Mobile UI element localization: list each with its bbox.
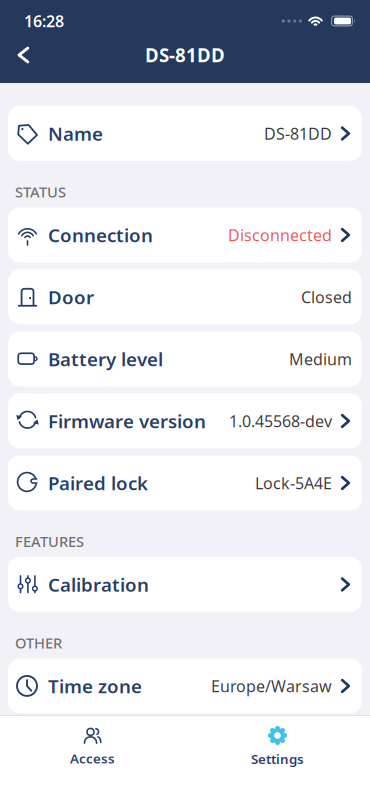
staticText: FEATURES <box>15 531 84 551</box>
button[interactable]: Time zone <box>0 658 370 713</box>
staticText: Settings <box>251 750 304 768</box>
button[interactable]: Settings <box>185 716 370 768</box>
staticText: Europe/Warsaw <box>211 675 332 696</box>
staticText: 1.0.45568-dev <box>229 410 332 432</box>
staticText: Door <box>48 285 94 309</box>
button[interactable]: Firmware version <box>0 393 370 448</box>
button[interactable]: Connection <box>0 207 370 262</box>
button[interactable]: Calibration <box>0 557 370 612</box>
staticText: Calibration <box>48 572 149 597</box>
staticText: Firmware version <box>48 409 206 433</box>
staticText: Closed <box>301 286 352 308</box>
button[interactable]: Name <box>0 106 370 161</box>
staticText: 16:28 <box>24 10 64 32</box>
staticText: Connection <box>48 223 153 247</box>
staticText: Lock-5A4E <box>255 472 332 494</box>
staticText: Paired lock <box>48 471 148 495</box>
button[interactable]: Paired lock <box>0 455 370 510</box>
staticText: Disconnected <box>228 224 332 246</box>
staticText: DS-81DD <box>145 43 225 67</box>
staticText: Name <box>48 121 103 146</box>
button[interactable]: Battery level <box>0 331 370 386</box>
button[interactable]: Back <box>16 46 30 63</box>
staticText: STATUS <box>15 182 66 201</box>
staticText: OTHER <box>15 633 62 652</box>
button[interactable]: Door <box>0 269 370 324</box>
staticText: Access <box>70 749 115 767</box>
staticText: DS-81DD <box>264 123 332 144</box>
staticText: Medium <box>289 348 352 370</box>
staticText: Time zone <box>48 673 142 698</box>
button[interactable]: Access <box>0 716 185 767</box>
staticText: Battery level <box>48 347 163 371</box>
